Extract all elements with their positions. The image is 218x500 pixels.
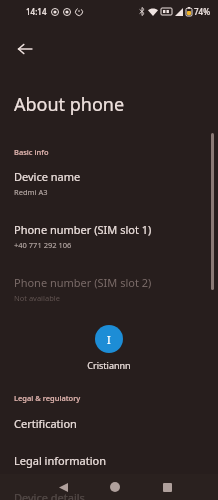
button[interactable]: Certification (0, 416, 218, 431)
button[interactable]: Back (48, 474, 78, 500)
staticText: About phone (14, 92, 125, 117)
staticText: I (107, 332, 111, 347)
button[interactable]: Device name (0, 169, 218, 197)
button[interactable]: Recent apps (152, 474, 182, 500)
button[interactable]: Phone number (SIM slot 1) (0, 222, 218, 250)
button[interactable]: Legal information (0, 453, 218, 468)
staticText: Device name (14, 169, 81, 184)
staticText: Legal & regulatory (14, 393, 81, 403)
staticText: Cristiannn (87, 359, 131, 371)
button[interactable]: I (0, 325, 218, 371)
staticText: +40 771 292 106 (14, 240, 72, 250)
button[interactable]: Device details (0, 490, 218, 500)
staticText: 74% (194, 6, 210, 17)
staticText: 14:14 (26, 6, 47, 17)
staticText: Basic info (14, 147, 49, 157)
staticText: Redmi A3 (14, 187, 48, 197)
staticText: Legal information (14, 453, 106, 468)
staticText: Device details (14, 490, 85, 500)
button[interactable]: Back (4, 28, 46, 70)
staticText: Phone number (SIM slot 1) (14, 222, 152, 237)
staticText: Not available (14, 293, 60, 303)
staticText: Certification (14, 416, 77, 431)
button[interactable]: Home (100, 474, 130, 500)
staticText: Phone number (SIM slot 2) (14, 275, 152, 290)
button[interactable]: Phone number (SIM slot 2) (0, 275, 218, 303)
